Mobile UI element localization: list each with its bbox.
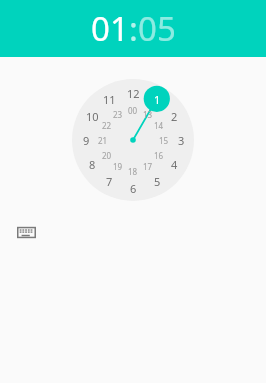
button[interactable]: 05 (138, 6, 176, 51)
button[interactable]: 16 (151, 147, 167, 163)
button[interactable]: 1 (147, 89, 167, 109)
button[interactable]: 01 (91, 6, 129, 51)
staticText: 19 (113, 161, 123, 172)
button[interactable]: 21 (95, 132, 111, 148)
staticText: 9 (83, 133, 90, 148)
staticText: 05 (138, 6, 176, 51)
staticText: 20 (102, 150, 112, 161)
staticText: 18 (128, 166, 138, 177)
staticText: 11 (103, 92, 116, 107)
button[interactable]: 10 (82, 106, 102, 126)
button[interactable]: 20 (99, 147, 115, 163)
staticText: 1 (154, 92, 161, 107)
button[interactable]: 5 (147, 171, 167, 191)
button[interactable]: 13 (140, 106, 156, 122)
button[interactable]: 17 (140, 158, 156, 174)
staticText: 3 (178, 133, 185, 148)
button[interactable]: 2 (164, 106, 184, 126)
button[interactable]: Switch to text input (11, 217, 41, 247)
button[interactable]: 8 (82, 154, 102, 174)
staticText: 6 (130, 181, 137, 196)
button[interactable]: 19 (110, 158, 126, 174)
staticText: 00 (128, 105, 138, 116)
button[interactable]: 12 (72, 79, 194, 201)
staticText: 21 (98, 135, 108, 146)
staticText: 22 (102, 120, 112, 131)
staticText: 7 (106, 174, 113, 189)
button[interactable]: 3 (171, 130, 191, 150)
button[interactable]: 15 (156, 132, 172, 148)
button[interactable]: 14 (151, 117, 167, 133)
staticText: 8 (89, 157, 96, 172)
button[interactable]: 00 (125, 102, 141, 118)
staticText: 10 (86, 109, 99, 124)
staticText: 13 (143, 109, 153, 120)
staticText: 2 (171, 109, 178, 124)
staticText: 16 (154, 150, 164, 161)
staticText: 23 (113, 109, 123, 120)
button[interactable]: 23 (110, 106, 126, 122)
button[interactable]: 4 (164, 154, 184, 174)
staticText: 12 (127, 86, 140, 101)
staticText: 17 (143, 161, 153, 172)
button[interactable]: 22 (99, 117, 115, 133)
button[interactable]: 12 (123, 83, 143, 103)
staticText: : (129, 6, 138, 51)
button[interactable]: 18 (125, 163, 141, 179)
button[interactable]: 11 (99, 89, 119, 109)
staticText: 14 (154, 120, 164, 131)
button[interactable]: 9 (76, 130, 96, 150)
button[interactable]: 6 (123, 178, 143, 198)
staticText: 5 (154, 174, 161, 189)
staticText: 15 (159, 135, 169, 146)
staticText: 4 (171, 157, 178, 172)
button[interactable]: 7 (99, 171, 119, 191)
staticText: 01 (91, 6, 129, 51)
